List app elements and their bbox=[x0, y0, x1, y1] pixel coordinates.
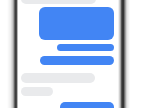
button[interactable]: Incoming message bbox=[21, 87, 53, 96]
button[interactable]: Incoming message bbox=[21, 73, 95, 83]
button[interactable]: Outgoing message bbox=[60, 102, 114, 108]
button[interactable]: Outgoing message bbox=[40, 56, 114, 65]
button[interactable]: Message bbox=[21, 0, 96, 4]
button[interactable]: Outgoing message bbox=[39, 7, 114, 40]
button[interactable]: Outgoing message bbox=[57, 44, 114, 51]
